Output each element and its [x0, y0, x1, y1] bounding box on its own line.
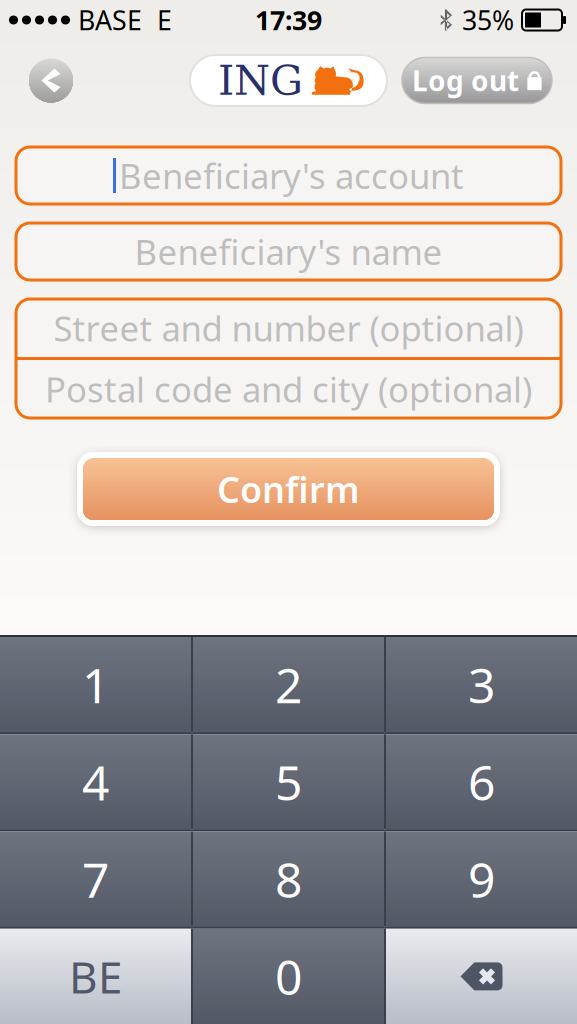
button[interactable]: Beneficiary's account	[16, 147, 561, 204]
staticText: Confirm	[217, 465, 360, 513]
staticText: 35%	[462, 2, 514, 38]
button[interactable]: Back	[29, 54, 73, 106]
staticText: ING	[218, 56, 303, 104]
staticText: 5	[275, 750, 302, 814]
staticText: BASE	[78, 2, 142, 38]
staticText: Postal code and city (optional)	[45, 366, 532, 412]
button[interactable]: Log out	[402, 57, 552, 103]
button[interactable]: 0	[193, 929, 384, 1024]
button[interactable]: 1	[0, 637, 191, 732]
button[interactable]: 7	[0, 831, 191, 927]
staticText: Log out	[412, 62, 519, 99]
staticText: 17:39	[255, 2, 322, 38]
button[interactable]: Delete	[386, 929, 577, 1024]
staticText: 0	[275, 944, 302, 1008]
staticText: Street and number (optional)	[53, 305, 523, 351]
staticText: Beneficiary's name	[134, 228, 442, 274]
button[interactable]: 5	[193, 734, 384, 829]
staticText: E	[157, 2, 172, 38]
button[interactable]: Beneficiary's name	[16, 223, 561, 280]
staticText: 7	[82, 847, 109, 911]
button[interactable]: 2	[193, 637, 384, 732]
button[interactable]: 8	[193, 831, 384, 927]
staticText: 6	[468, 750, 495, 814]
staticText: BE	[69, 947, 122, 1006]
staticText: 4	[82, 750, 109, 814]
button[interactable]: 4	[0, 734, 191, 829]
staticText: Beneficiary's account	[119, 152, 464, 198]
button[interactable]: BE	[0, 929, 191, 1024]
button[interactable]: 9	[386, 831, 577, 927]
staticText: 9	[468, 847, 495, 911]
staticText: 2	[275, 653, 302, 716]
button[interactable]: 3	[386, 637, 577, 732]
button[interactable]: Confirm	[16, 437, 561, 526]
staticText: 8	[275, 847, 302, 911]
button[interactable]: 6	[386, 734, 577, 829]
staticText: 1	[82, 653, 109, 716]
staticText: 3	[468, 653, 495, 716]
